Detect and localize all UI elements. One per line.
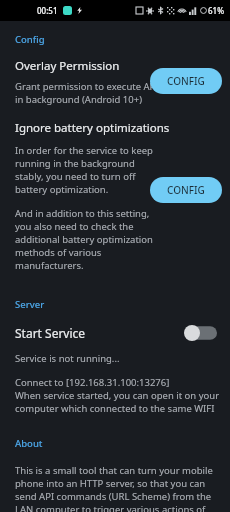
staticText: Start Service <box>15 325 86 341</box>
staticText: Server <box>15 298 45 311</box>
staticText: Grant permission to execute API in backg… <box>15 80 165 106</box>
staticText: In order for the service to keep running… <box>15 144 165 196</box>
button[interactable]: Start Service <box>0 311 230 343</box>
staticText: This is a small tool that can turn your … <box>15 464 220 512</box>
staticText: Config <box>15 33 45 46</box>
button[interactable]: CONFIG <box>150 177 222 203</box>
staticText: Service is not running... <box>15 352 120 365</box>
staticText: 61% <box>208 5 224 16</box>
staticText: And in addition to this setting, you als… <box>15 207 165 272</box>
staticText: CONFIG <box>167 183 205 197</box>
staticText: CONFIG <box>167 74 205 88</box>
button[interactable]: Start Service toggle <box>183 323 217 343</box>
staticText: Overlay Permission <box>15 58 120 74</box>
staticText: About <box>15 437 43 450</box>
staticText: Ignore battery optimizations <box>15 120 170 136</box>
button[interactable]: CONFIG <box>150 68 222 94</box>
staticText: 00:51 <box>37 5 58 16</box>
staticText: Connect to [192.168.31.100:13276] When s… <box>15 376 220 415</box>
